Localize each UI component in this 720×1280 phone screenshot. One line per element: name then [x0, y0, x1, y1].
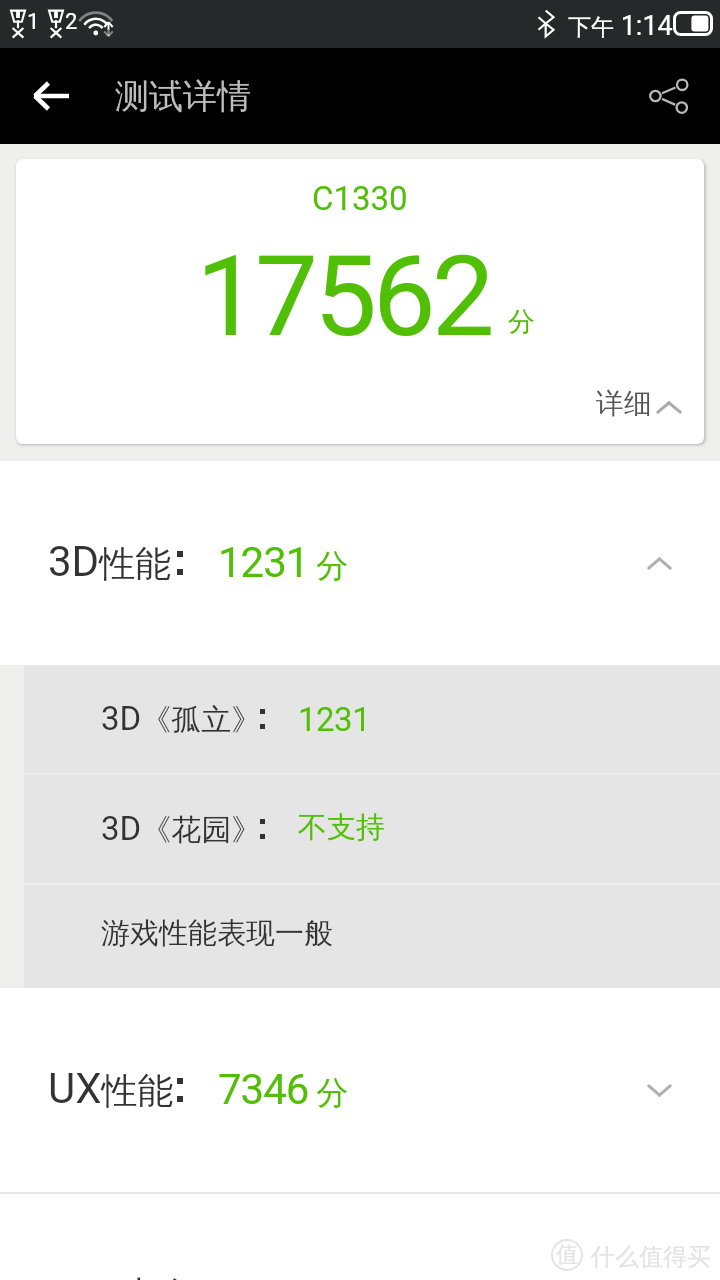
- button[interactable]: 3D《花园》: [24, 775, 720, 883]
- staticText: 什么值得买: [591, 1242, 711, 1272]
- button[interactable]: Share: [631, 58, 707, 134]
- staticText: 下午 1:14: [568, 10, 673, 42]
- staticText: 不支持: [298, 809, 385, 846]
- staticText: 测试详情: [115, 75, 251, 118]
- button[interactable]: 游戏性能表现一般: [24, 885, 720, 988]
- staticText: 17562: [196, 231, 491, 362]
- staticText: 游戏性能表现一般: [101, 915, 333, 952]
- button[interactable]: UX性能: [0, 988, 720, 1192]
- staticText: 3D性能: [48, 537, 172, 587]
- staticText: 1231: [298, 700, 371, 739]
- button[interactable]: C1330: [16, 159, 704, 444]
- staticText: C1330: [312, 179, 408, 218]
- staticText: 7346 分: [218, 1065, 349, 1114]
- staticText: 1231 分: [218, 538, 349, 587]
- staticText: 3D《花园》: [101, 809, 262, 849]
- staticText: 值: [556, 1241, 578, 1269]
- staticText: 分: [508, 305, 535, 339]
- staticText: 内存: [122, 1272, 194, 1280]
- staticText: 3D《孤立》: [101, 699, 262, 739]
- staticText: UX性能: [48, 1064, 174, 1114]
- staticText: 1: [27, 9, 40, 35]
- staticText: 2: [65, 9, 78, 35]
- button[interactable]: Back: [14, 59, 88, 133]
- button[interactable]: 3D《孤立》: [24, 665, 720, 773]
- staticText: 详细: [596, 386, 652, 421]
- button[interactable]: 3D性能: [0, 461, 720, 665]
- button[interactable]: 详细: [596, 386, 682, 421]
